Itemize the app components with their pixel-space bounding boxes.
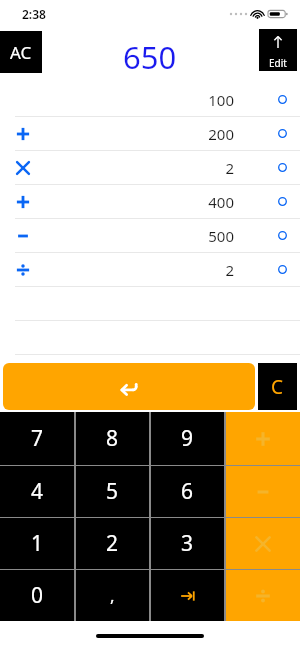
- staticText: 4: [31, 477, 44, 506]
- button[interactable]: 2: [76, 518, 149, 569]
- button[interactable]: 200: [0, 117, 300, 150]
- button[interactable]: 8: [76, 412, 149, 465]
- button[interactable]: [226, 518, 300, 569]
- button[interactable]: [226, 412, 300, 465]
- staticText: 200: [150, 124, 234, 144]
- staticText: 400: [150, 192, 234, 212]
- button[interactable]: 4: [0, 466, 74, 517]
- staticText: 2:38: [22, 6, 46, 22]
- button[interactable]: 2: [0, 151, 300, 184]
- button[interactable]: AC: [0, 31, 42, 73]
- button[interactable]: 7: [0, 412, 74, 465]
- button[interactable]: 0: [0, 570, 74, 621]
- staticText: 100: [150, 90, 234, 110]
- button[interactable]: 100: [0, 83, 300, 116]
- button[interactable]: 500: [0, 219, 300, 252]
- staticText: 2: [150, 260, 234, 280]
- staticText: 8: [106, 424, 119, 453]
- button[interactable]: Move up: [259, 29, 297, 71]
- staticText: 500: [150, 226, 234, 246]
- button[interactable]: C: [258, 363, 297, 410]
- staticText: 7: [31, 424, 44, 453]
- other: Enter: [117, 375, 141, 399]
- button[interactable]: 400: [0, 185, 300, 218]
- button[interactable]: ,: [76, 570, 149, 621]
- button[interactable]: 6: [151, 466, 224, 517]
- staticText: 0: [31, 581, 44, 610]
- button[interactable]: 2: [0, 253, 300, 286]
- staticText: AC: [10, 41, 32, 64]
- staticText: 2: [150, 158, 234, 178]
- button[interactable]: Enter: [3, 363, 255, 410]
- staticText: 650: [123, 36, 177, 78]
- staticText: 1: [31, 529, 44, 558]
- button[interactable]: 5: [76, 466, 149, 517]
- other: Tab: [179, 587, 197, 605]
- button[interactable]: 3: [151, 518, 224, 569]
- staticText: 3: [181, 529, 194, 558]
- staticText: 6: [181, 477, 194, 506]
- staticText: 9: [181, 424, 194, 453]
- other: Move up: [271, 35, 285, 49]
- button[interactable]: Tab: [151, 570, 224, 621]
- button[interactable]: [226, 466, 300, 517]
- staticText: Edit: [269, 56, 287, 70]
- staticText: 5: [106, 477, 119, 506]
- button[interactable]: 9: [151, 412, 224, 465]
- button[interactable]: 1: [0, 518, 74, 569]
- staticText: C: [271, 374, 284, 400]
- button[interactable]: [226, 570, 300, 621]
- staticText: ,: [110, 584, 115, 607]
- staticText: 2: [106, 529, 119, 558]
